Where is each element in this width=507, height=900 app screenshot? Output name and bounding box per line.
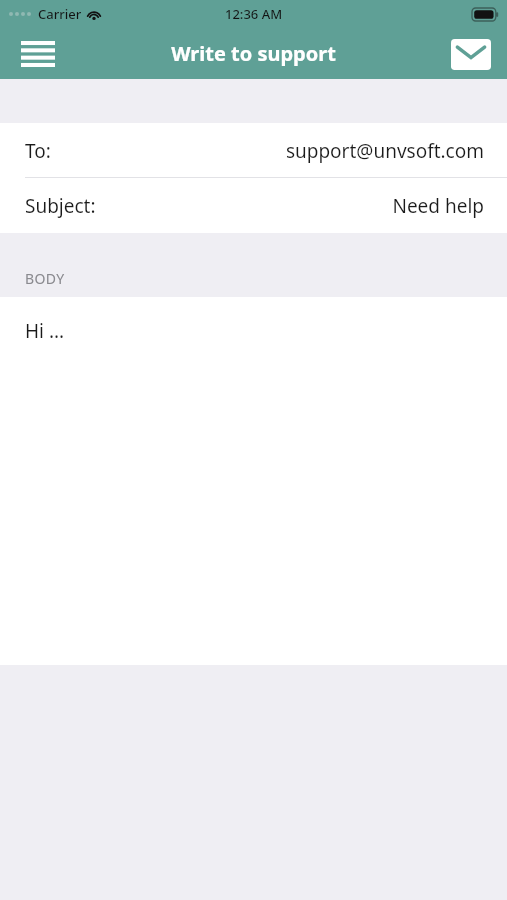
button[interactable]: To:: [0, 123, 507, 178]
staticText: BODY: [25, 269, 65, 288]
staticText: Hi ...: [25, 318, 65, 344]
staticText: Need help: [392, 193, 484, 219]
staticText: Carrier: [38, 5, 82, 23]
staticText: Write to support: [171, 40, 336, 67]
button[interactable]: Subject:: [0, 178, 507, 233]
button[interactable]: Send email: [447, 30, 495, 78]
staticText: To:: [25, 138, 51, 164]
button[interactable]: Hi ...: [0, 297, 507, 665]
staticText: support@unvsoft.com: [285, 138, 484, 164]
staticText: 12:36 AM: [225, 5, 283, 23]
staticText: Subject:: [25, 193, 96, 219]
button[interactable]: Menu: [14, 30, 62, 78]
